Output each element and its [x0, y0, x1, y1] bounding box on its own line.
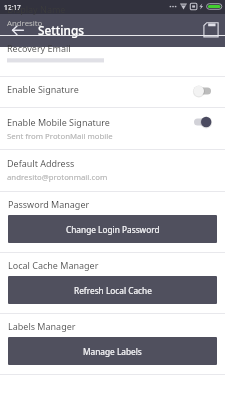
button[interactable]: Enable Mobile Signature [0, 108, 225, 149]
staticText: Default Address [7, 157, 75, 169]
button[interactable]: Recovery Email [0, 36, 225, 76]
staticText: Local Cache Manager [8, 259, 99, 271]
staticText: Change Login Password [66, 224, 160, 235]
staticText: Andresito [7, 18, 43, 29]
staticText: andresito@protonmail.com [7, 172, 108, 183]
staticText: Sent from ProtonMail mobile [7, 131, 113, 142]
staticText: Labels Manager [8, 320, 76, 332]
button[interactable]: Manage Labels [8, 337, 217, 365]
staticText: Enable Mobile Signature [7, 116, 110, 128]
button[interactable]: Enable Signature [0, 77, 225, 107]
staticText: Display Name [7, 3, 66, 15]
button[interactable]: Back [8, 21, 28, 41]
staticText: Settings [38, 22, 84, 38]
staticText: Password Manager [8, 198, 90, 210]
button[interactable]: Display Name [0, 0, 225, 35]
button[interactable]: Change Login Password [8, 215, 217, 243]
staticText: 12:17 [4, 3, 21, 12]
button[interactable]: Save [201, 21, 221, 41]
button[interactable]: Refresh Local Cache [8, 276, 217, 304]
staticText: Refresh Local Cache [74, 285, 152, 296]
staticText: Manage Labels [83, 346, 142, 357]
button[interactable]: Default Address [0, 150, 225, 191]
staticText: Enable Signature [7, 83, 79, 95]
staticText: Recovery Email [7, 42, 71, 54]
